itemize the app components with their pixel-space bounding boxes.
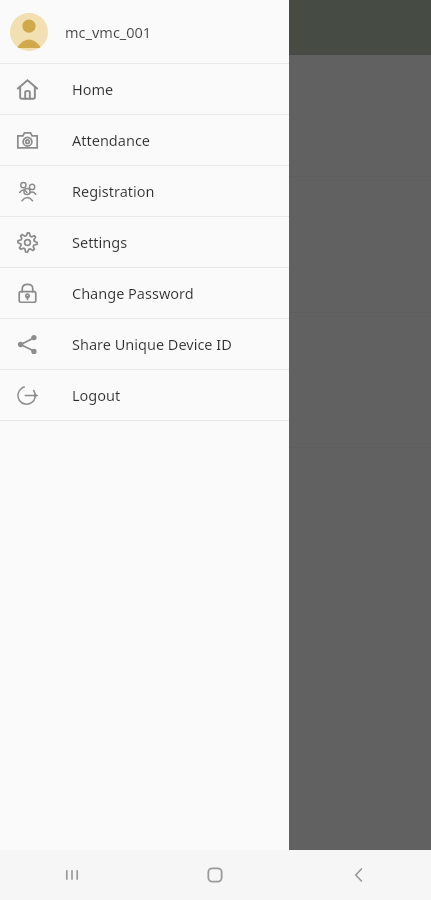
staticText: Settings xyxy=(2,263,60,283)
button[interactable]: Attendance xyxy=(0,115,289,166)
button[interactable]: Back xyxy=(287,850,431,900)
staticText: Registration xyxy=(72,181,155,201)
staticText: Registration xyxy=(2,141,88,161)
button[interactable]: Settings xyxy=(0,217,289,268)
button[interactable]: Logout xyxy=(0,370,289,421)
staticText: Home xyxy=(72,79,114,99)
staticText: Settings xyxy=(72,232,128,252)
staticText: Logout xyxy=(2,399,52,419)
button[interactable]: Recent apps xyxy=(0,850,143,900)
button[interactable]: Home xyxy=(143,850,287,900)
staticText: Share Unique Device ID xyxy=(72,334,232,354)
button[interactable]: Home xyxy=(0,64,289,115)
button[interactable]: Change Password xyxy=(0,268,289,319)
button[interactable]: Registration xyxy=(0,166,289,217)
button[interactable]: Share Unique Device ID xyxy=(0,319,289,370)
staticText: mc_vmc_001 xyxy=(65,22,152,42)
button[interactable]: mc_vmc_001 xyxy=(0,0,289,63)
staticText: Attendance xyxy=(72,130,151,150)
staticText: Change Password xyxy=(72,283,194,303)
staticText: Logout xyxy=(72,385,121,405)
